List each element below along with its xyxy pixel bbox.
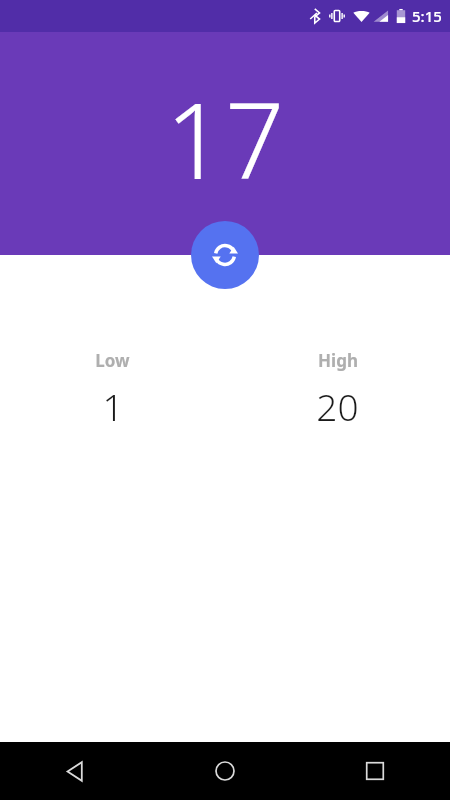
staticText: 20 bbox=[316, 381, 359, 431]
button[interactable]: High bbox=[225, 349, 450, 431]
button[interactable]: Back bbox=[0, 742, 150, 800]
staticText: High bbox=[318, 349, 358, 372]
staticText: 5:15 bbox=[412, 6, 442, 26]
button[interactable]: Low bbox=[0, 349, 225, 431]
staticText: Low bbox=[95, 349, 130, 372]
staticText: 1 bbox=[102, 381, 124, 431]
button[interactable]: Refresh bbox=[191, 221, 259, 289]
button[interactable]: Home bbox=[150, 742, 300, 800]
button[interactable]: Recent apps bbox=[300, 742, 450, 800]
staticText: 17 bbox=[0, 68, 450, 210]
